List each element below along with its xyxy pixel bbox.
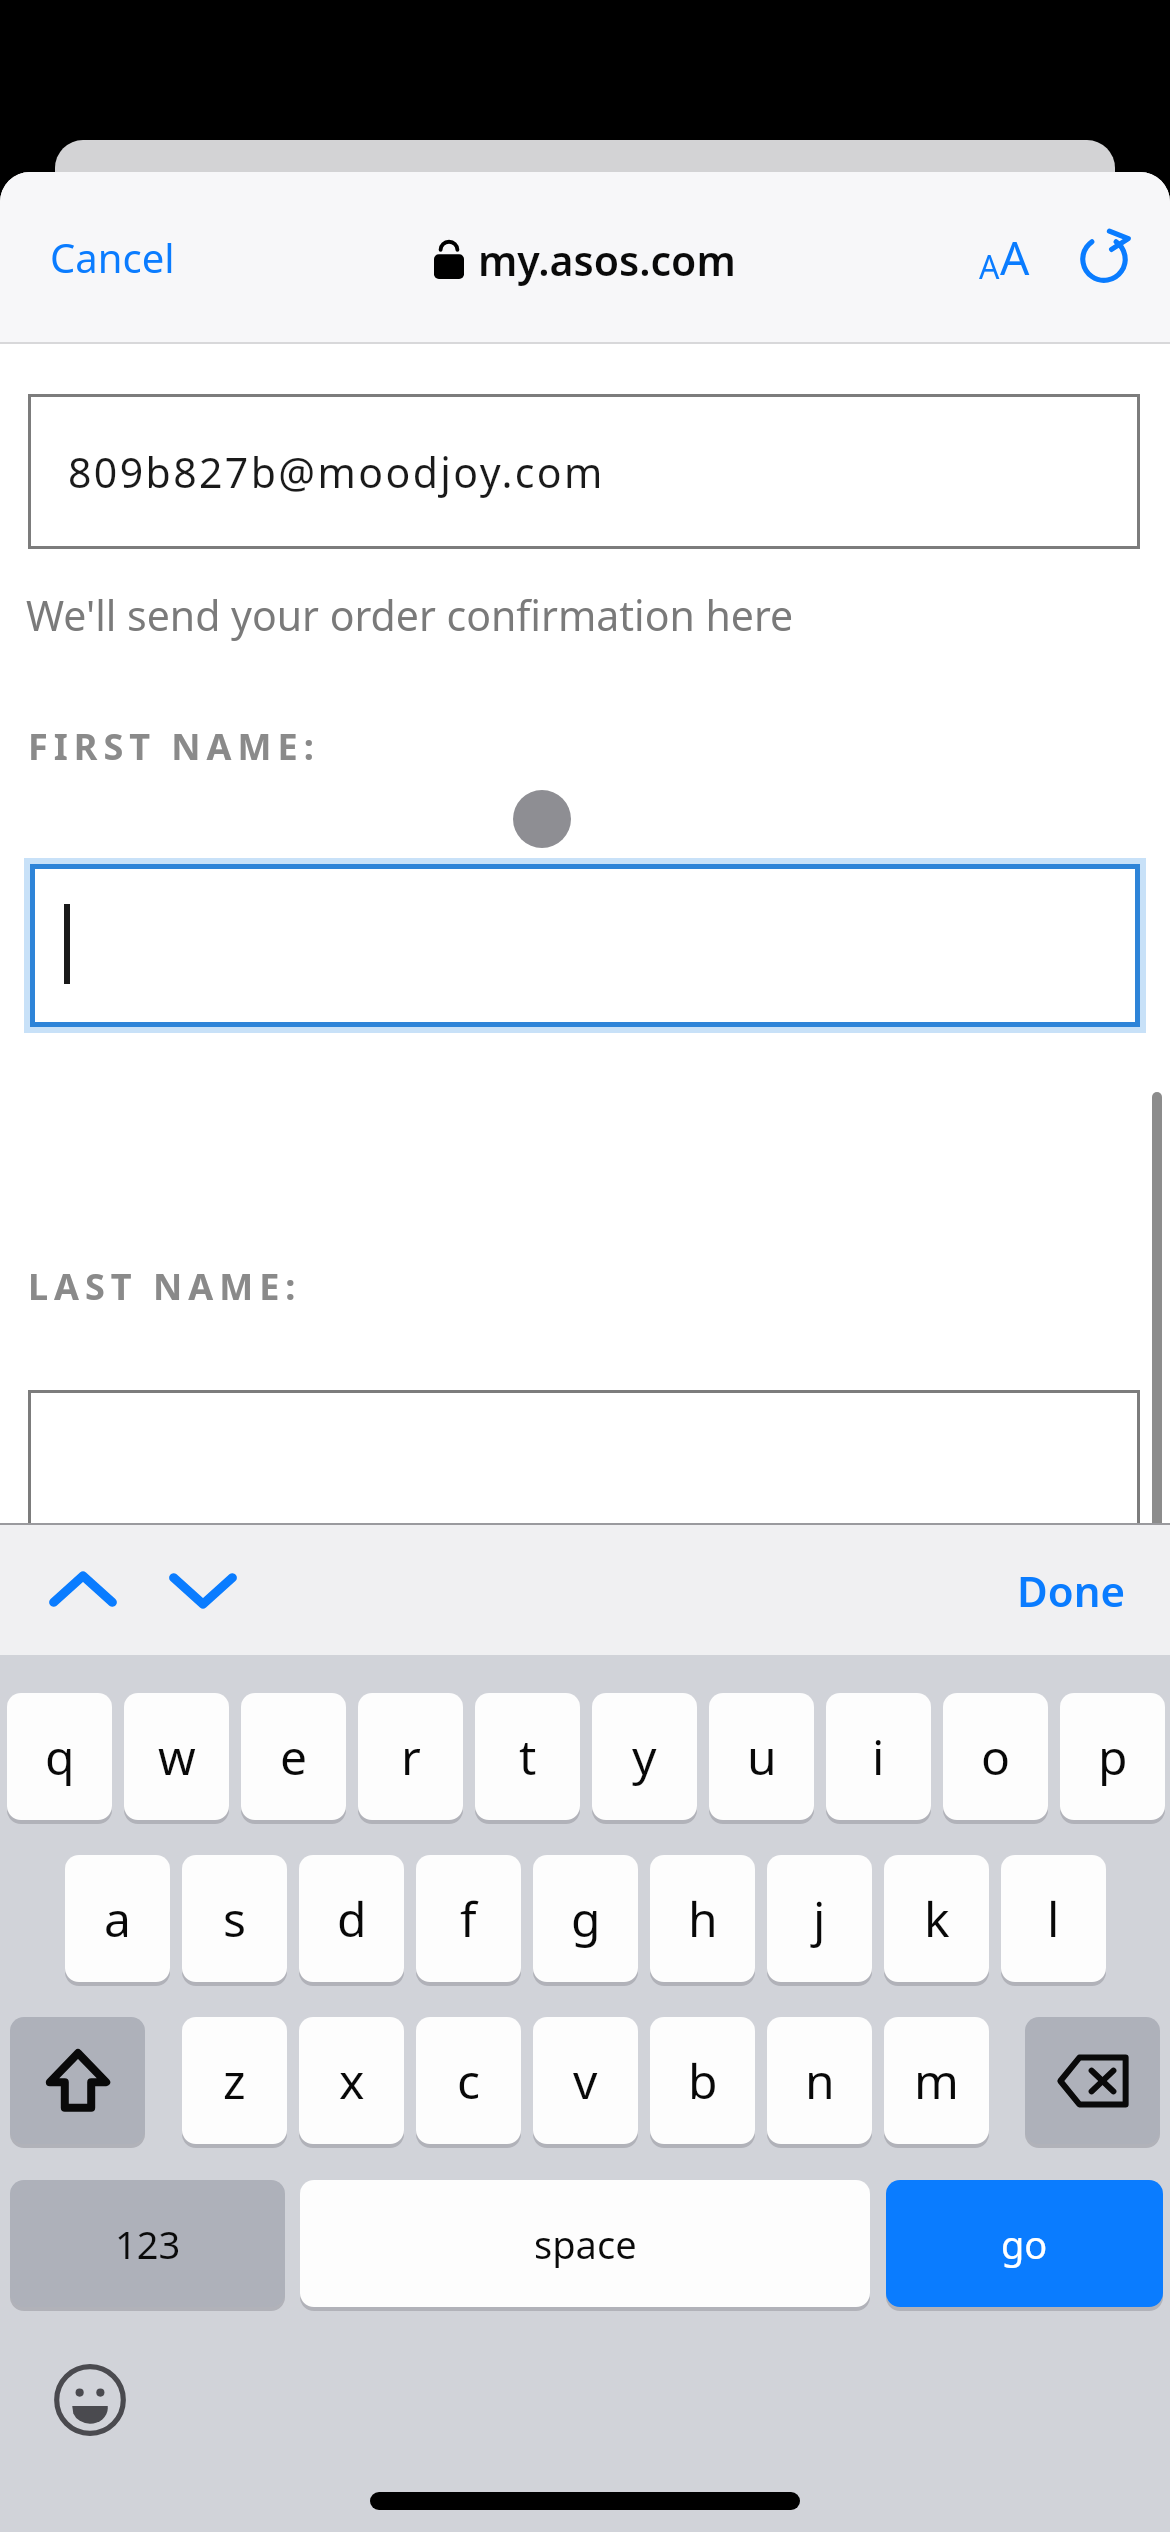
button[interactable]: p xyxy=(1060,1693,1165,1820)
button[interactable]: j xyxy=(767,1855,872,1982)
staticText: f xyxy=(460,1886,477,1951)
staticText: FIRST NAME: xyxy=(28,722,320,771)
staticText: i xyxy=(872,1724,885,1789)
button[interactable]: Space xyxy=(300,2180,870,2307)
button[interactable]: w xyxy=(124,1693,229,1820)
button[interactable]: o xyxy=(943,1693,1048,1820)
button[interactable]: v xyxy=(533,2017,638,2144)
button[interactable]: t xyxy=(475,1693,580,1820)
staticText: j xyxy=(813,1886,826,1951)
button[interactable]: z xyxy=(182,2017,287,2144)
button[interactable]: Text size options xyxy=(956,209,1052,305)
button[interactable]: u xyxy=(709,1693,814,1820)
button[interactable]: l xyxy=(1001,1855,1106,1982)
button[interactable]: Next field xyxy=(148,1535,258,1645)
staticText: A xyxy=(979,245,1000,289)
button[interactable]: k xyxy=(884,1855,989,1982)
button[interactable]: Go xyxy=(886,2180,1163,2307)
staticText: w xyxy=(158,1724,196,1789)
staticText: e xyxy=(280,1724,308,1789)
button[interactable]: h xyxy=(650,1855,755,1982)
staticText: k xyxy=(924,1886,950,1951)
staticText: We'll send your order confirmation here xyxy=(26,587,794,643)
staticText: space xyxy=(534,2218,637,2270)
staticText: A xyxy=(1000,226,1030,289)
button[interactable]: Emoji keyboard xyxy=(45,2355,135,2445)
button[interactable]: f xyxy=(416,1855,521,1982)
button[interactable]: c xyxy=(416,2017,521,2144)
staticText: m xyxy=(914,2048,959,2113)
staticText: d xyxy=(337,1886,367,1951)
button[interactable]: Backspace xyxy=(1025,2017,1160,2144)
staticText: Done xyxy=(1017,1562,1126,1619)
staticText: y xyxy=(632,1724,657,1789)
staticText: p xyxy=(1098,1724,1128,1789)
button[interactable]: a xyxy=(65,1855,170,1982)
button[interactable]: r xyxy=(358,1693,463,1820)
button[interactable]: 809b827b@moodjoy.com xyxy=(28,394,1140,549)
button[interactable] xyxy=(28,1390,1140,1558)
staticText: c xyxy=(457,2048,481,2113)
staticText: t xyxy=(519,1724,537,1789)
button[interactable]: Shift xyxy=(10,2017,145,2144)
button[interactable]: y xyxy=(592,1693,697,1820)
staticText: v xyxy=(573,2048,598,2113)
button[interactable]: q xyxy=(7,1693,112,1820)
button[interactable]: Cancel xyxy=(20,214,205,300)
button[interactable]: Numbers and symbols xyxy=(10,2180,285,2307)
staticText: l xyxy=(1047,1886,1060,1951)
staticText: my.asos.com xyxy=(478,232,736,288)
button[interactable]: Done xyxy=(993,1544,1150,1637)
staticText: n xyxy=(805,2048,835,2113)
staticText: go xyxy=(1001,2218,1048,2270)
button[interactable]: n xyxy=(767,2017,872,2144)
button[interactable]: m xyxy=(884,2017,989,2144)
staticText: PASSWORD: xyxy=(28,1662,291,1711)
staticText: g xyxy=(571,1886,601,1951)
button[interactable]: Previous field xyxy=(28,1535,138,1645)
staticText: LAST NAME: xyxy=(28,1262,302,1311)
button[interactable]: x xyxy=(299,2017,404,2144)
staticText: s xyxy=(223,1886,246,1951)
staticText: a xyxy=(104,1886,131,1951)
staticText: 123 xyxy=(115,2218,181,2270)
button[interactable]: s xyxy=(182,1855,287,1982)
staticText: u xyxy=(747,1724,777,1789)
button[interactable]: Reload page xyxy=(1056,209,1152,305)
button[interactable]: d xyxy=(299,1855,404,1982)
staticText: z xyxy=(223,2048,246,2113)
staticText: q xyxy=(45,1724,75,1789)
staticText: b xyxy=(688,2048,718,2113)
staticText: x xyxy=(339,2048,365,2113)
staticText: h xyxy=(688,1886,718,1951)
button[interactable] xyxy=(30,864,1140,1027)
button[interactable]: g xyxy=(533,1855,638,1982)
button[interactable]: i xyxy=(826,1693,931,1820)
button[interactable]: e xyxy=(241,1693,346,1820)
staticText: r xyxy=(401,1724,421,1789)
button[interactable]: b xyxy=(650,2017,755,2144)
staticText: 809b827b@moodjoy.com xyxy=(68,444,605,500)
staticText: o xyxy=(981,1724,1011,1789)
staticText: Cancel xyxy=(50,230,175,284)
